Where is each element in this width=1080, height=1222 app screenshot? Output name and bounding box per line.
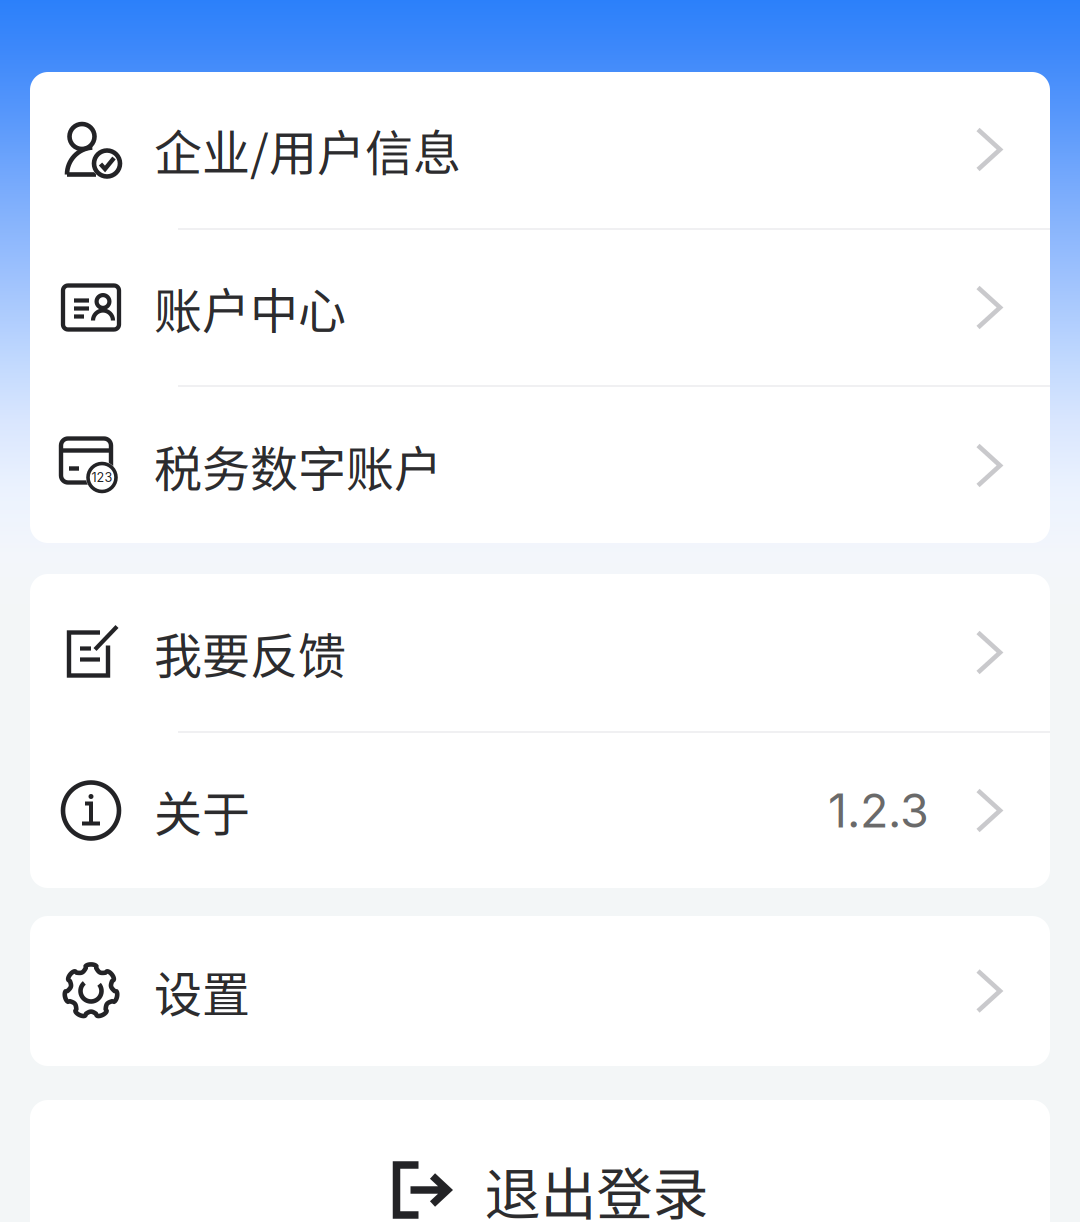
button[interactable]: 关于 xyxy=(30,733,1050,888)
staticText: 123 xyxy=(91,470,112,485)
staticText: 关于 xyxy=(154,776,250,845)
button[interactable]: 123 xyxy=(30,387,1050,544)
staticText: 企业/用户信息 xyxy=(154,115,461,184)
staticText: 设置 xyxy=(154,956,250,1026)
button[interactable]: 我要反馈 xyxy=(30,574,1050,731)
button[interactable]: 设置 xyxy=(30,916,1050,1066)
staticText: 税务数字账户 xyxy=(154,431,442,500)
button[interactable]: 企业/用户信息 xyxy=(30,71,1050,228)
staticText: 我要反馈 xyxy=(154,618,346,687)
staticText: 账户中心 xyxy=(154,273,346,342)
staticText: 退出登录 xyxy=(484,1149,708,1222)
button[interactable]: 退出登录 xyxy=(30,1100,1050,1222)
staticText: 1.2.3 xyxy=(828,782,929,839)
button[interactable]: 账户中心 xyxy=(30,230,1050,385)
